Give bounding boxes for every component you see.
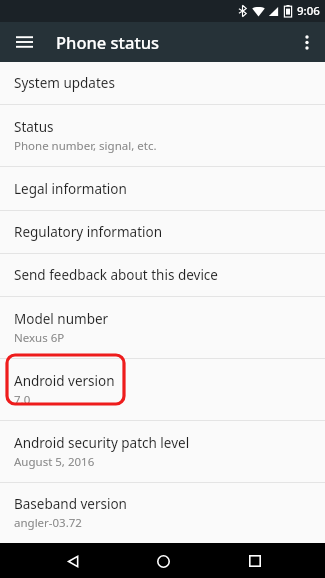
staticText: Android security patch level — [14, 434, 190, 452]
staticText: Android version — [14, 372, 115, 390]
staticText: Model number — [14, 310, 109, 328]
button[interactable]: Open navigation drawer — [8, 26, 40, 58]
button[interactable]: Status — [0, 105, 325, 166]
button[interactable]: Back — [58, 546, 88, 576]
button[interactable]: Recent apps — [240, 546, 270, 576]
staticText: Status — [14, 118, 54, 136]
staticText: Legal information — [14, 180, 127, 198]
button[interactable]: Send feedback about this device — [0, 254, 325, 296]
staticText: August 5, 2016 — [14, 454, 95, 470]
button[interactable]: Model number — [0, 297, 325, 358]
button[interactable]: Legal information — [0, 167, 325, 210]
button[interactable]: Android version — [0, 359, 325, 420]
button[interactable]: Home — [148, 546, 178, 576]
button[interactable]: More options — [291, 26, 323, 58]
button[interactable]: Android security patch level — [0, 421, 325, 482]
staticText: Phone status — [56, 31, 160, 53]
staticText: Baseband version — [14, 495, 127, 513]
staticText: 7.0 — [14, 392, 31, 408]
button[interactable]: Regulatory information — [0, 211, 325, 253]
button[interactable]: System updates — [0, 62, 325, 104]
staticText: System updates — [14, 74, 115, 92]
staticText: Phone number, signal, etc. — [14, 138, 157, 154]
button[interactable]: Baseband version — [0, 483, 325, 543]
staticText: Regulatory information — [14, 223, 163, 241]
staticText: angler-03.72 — [14, 515, 82, 531]
staticText: 9:06 — [297, 3, 320, 19]
staticText: Nexus 6P — [14, 330, 65, 346]
staticText: Send feedback about this device — [14, 266, 218, 284]
